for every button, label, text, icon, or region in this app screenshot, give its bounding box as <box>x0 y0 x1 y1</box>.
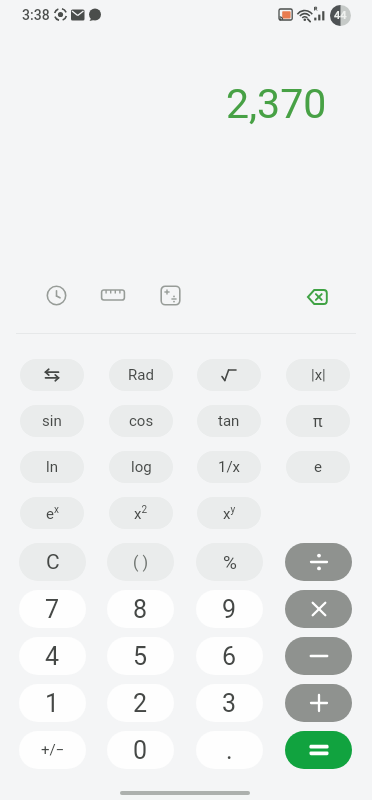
staticText: 1 <box>45 689 60 718</box>
button[interactable]: 7 <box>19 590 86 628</box>
button[interactable]: 9 <box>196 590 263 628</box>
button[interactable]: ( ) <box>107 543 174 581</box>
button[interactable]: 5 <box>107 637 174 675</box>
button[interactable]: 6 <box>196 637 263 675</box>
staticText: sin <box>42 412 62 430</box>
staticText: . <box>226 736 233 765</box>
staticText: 6 <box>222 642 237 671</box>
staticText: 8 <box>133 595 148 624</box>
button[interactable] <box>285 590 352 628</box>
button[interactable]: ex <box>20 497 84 529</box>
button[interactable]: e <box>286 451 350 483</box>
button[interactable]: +/− <box>19 731 86 769</box>
button[interactable]: 2 <box>107 684 174 722</box>
button[interactable] <box>285 543 352 581</box>
button[interactable] <box>285 637 352 675</box>
staticText: 0 <box>133 736 148 765</box>
button[interactable]: Rad <box>109 359 173 391</box>
staticText: 7 <box>45 595 60 624</box>
staticText: Rad <box>128 366 154 384</box>
button[interactable] <box>97 280 128 310</box>
staticText: +/− <box>41 741 65 759</box>
staticText: ex <box>46 504 59 523</box>
button[interactable]: 4 <box>19 637 86 675</box>
staticText: 1/x <box>218 458 241 476</box>
staticText: log <box>131 458 152 476</box>
button[interactable]: π <box>286 405 350 437</box>
staticText: 5 <box>133 642 148 671</box>
button[interactable]: cos <box>109 405 173 437</box>
button[interactable] <box>285 731 352 769</box>
staticText: 3 <box>222 689 237 718</box>
staticText: tan <box>218 412 240 430</box>
button[interactable]: ln <box>20 451 84 483</box>
button[interactable]: tan <box>197 405 261 437</box>
button[interactable]: 1 <box>19 684 86 722</box>
button[interactable] <box>197 359 261 391</box>
staticText: 3:38 <box>22 7 50 23</box>
staticText: π <box>313 412 323 431</box>
staticText: 44 <box>334 9 347 22</box>
staticText: x2 <box>134 504 148 523</box>
button[interactable]: 3 <box>196 684 263 722</box>
button[interactable]: sin <box>20 405 84 437</box>
staticText: ln <box>46 458 58 476</box>
button[interactable]: 8 <box>107 590 174 628</box>
button[interactable] <box>41 280 71 310</box>
button[interactable] <box>285 684 352 722</box>
staticText: e <box>314 458 322 476</box>
button[interactable]: . <box>196 731 263 769</box>
staticText: % <box>223 551 237 573</box>
button[interactable]: xy <box>197 497 261 529</box>
staticText: 2 <box>133 689 148 718</box>
staticText: C <box>46 550 60 575</box>
staticText: 2,370 <box>226 80 327 128</box>
staticText: |x| <box>311 366 326 384</box>
button[interactable]: 1/x <box>197 451 261 483</box>
button[interactable]: C <box>19 543 86 581</box>
staticText: ( ) <box>133 553 149 572</box>
button[interactable] <box>155 280 186 310</box>
button[interactable]: 0 <box>107 731 174 769</box>
staticText: cos <box>129 412 154 430</box>
staticText: 9 <box>222 595 237 624</box>
staticText: 4 <box>45 642 60 671</box>
button[interactable] <box>301 283 332 311</box>
button[interactable]: log <box>109 451 173 483</box>
button[interactable] <box>20 359 84 391</box>
button[interactable]: |x| <box>286 359 350 391</box>
button[interactable]: x2 <box>109 497 173 529</box>
staticText: xy <box>223 504 236 523</box>
button[interactable]: % <box>196 543 263 581</box>
